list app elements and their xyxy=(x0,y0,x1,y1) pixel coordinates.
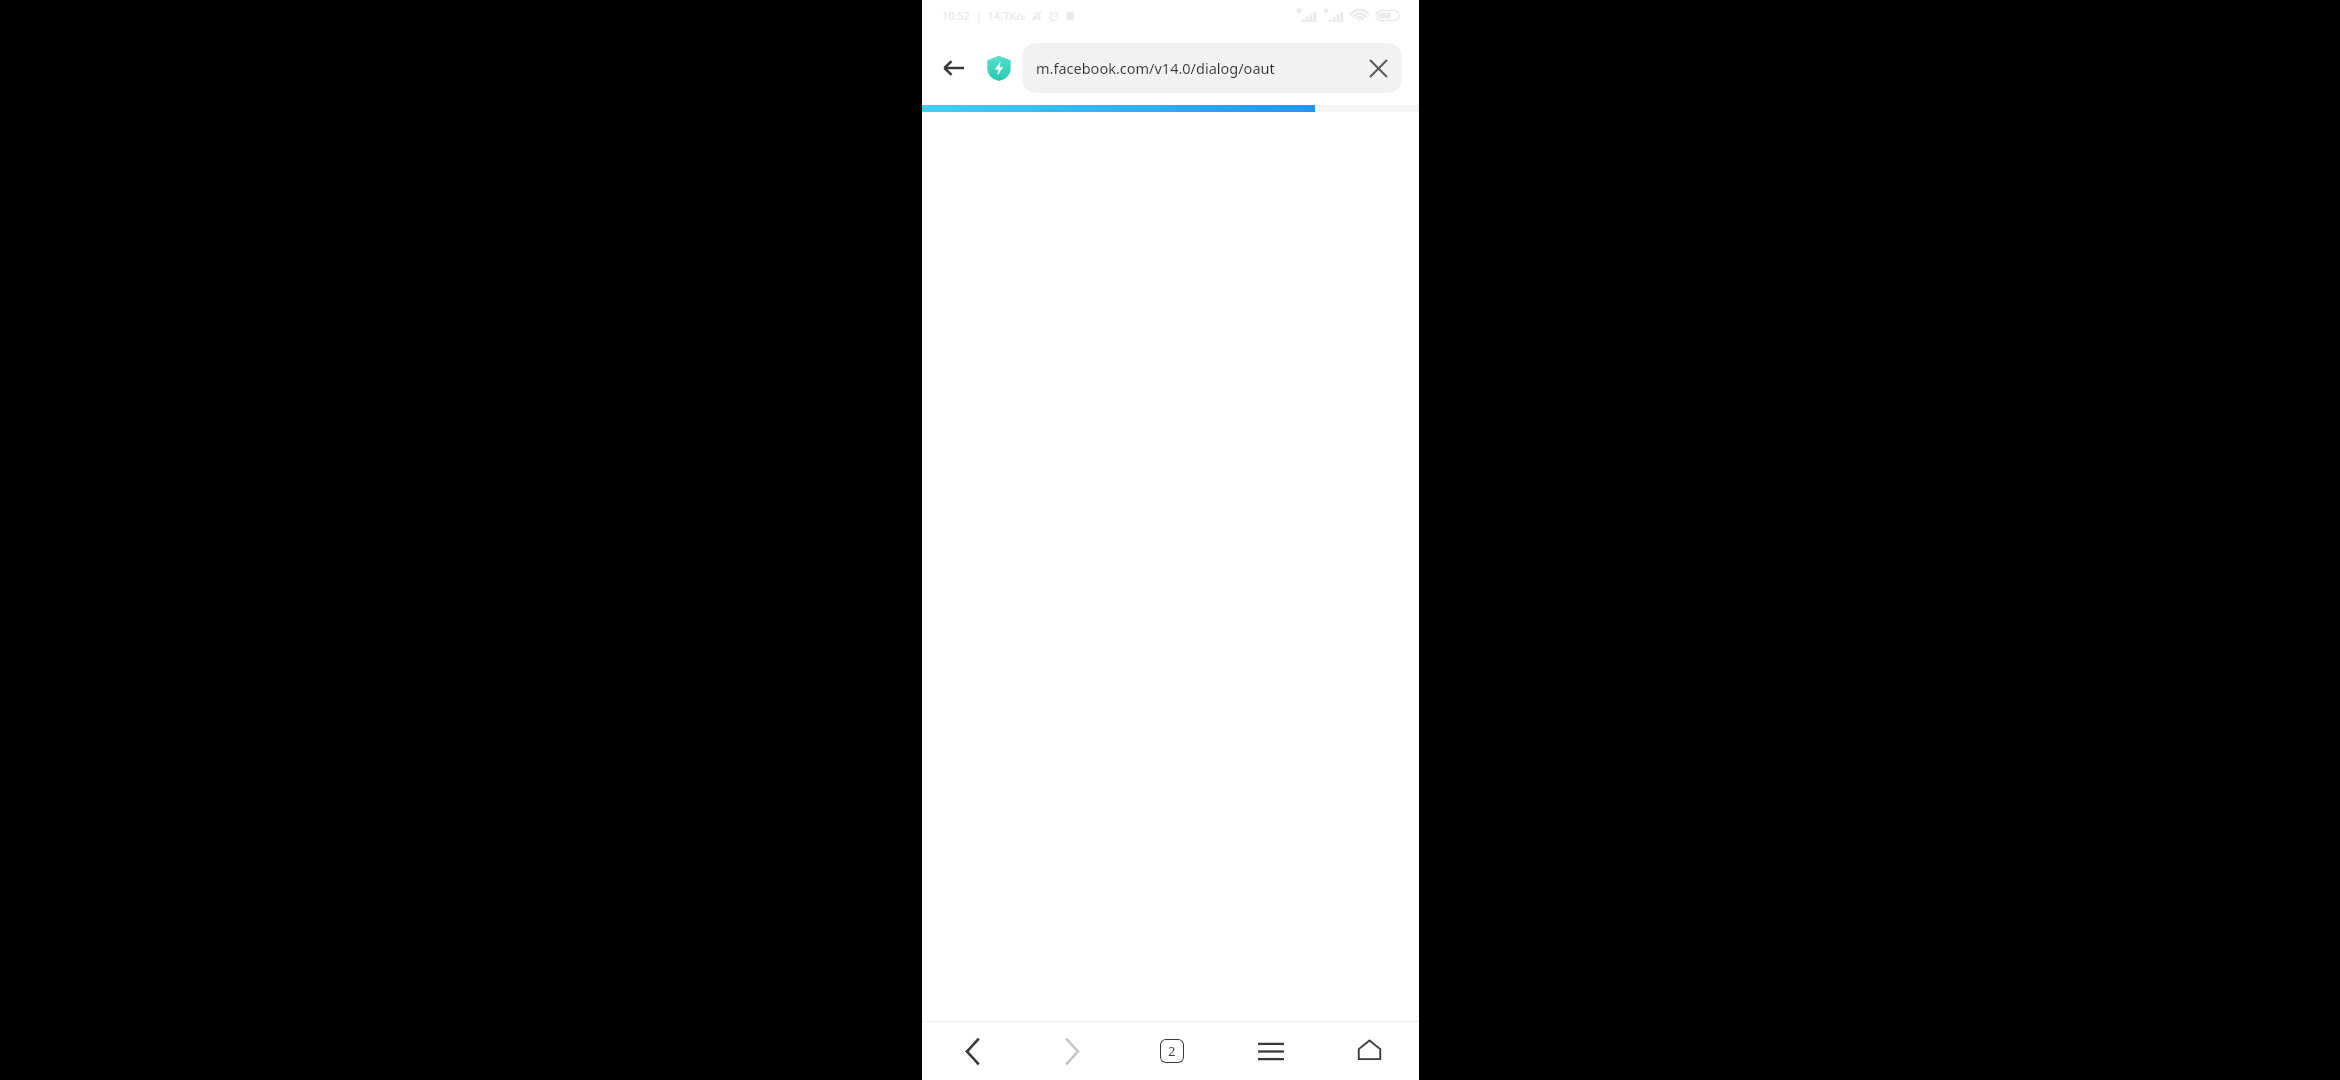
button[interactable]: Tabs: 2 xyxy=(1122,1022,1221,1080)
button[interactable]: Menu xyxy=(1221,1022,1320,1080)
button[interactable]: Back xyxy=(930,44,978,92)
staticText: 10:52 | 14.7K/s xyxy=(942,8,1026,23)
staticText: m.facebook.com/v14.0/dialog/oaut xyxy=(1036,58,1358,78)
button[interactable]: Forward xyxy=(1022,1022,1122,1080)
button[interactable]: Back xyxy=(922,1022,1022,1080)
button[interactable]: Site security xyxy=(978,47,1020,89)
button[interactable]: Stop loading xyxy=(1358,48,1398,88)
button[interactable]: Home xyxy=(1320,1022,1419,1080)
button[interactable]: m.facebook.com/v14.0/dialog/oaut xyxy=(1022,43,1402,93)
staticText: 2 xyxy=(1168,1042,1176,1060)
